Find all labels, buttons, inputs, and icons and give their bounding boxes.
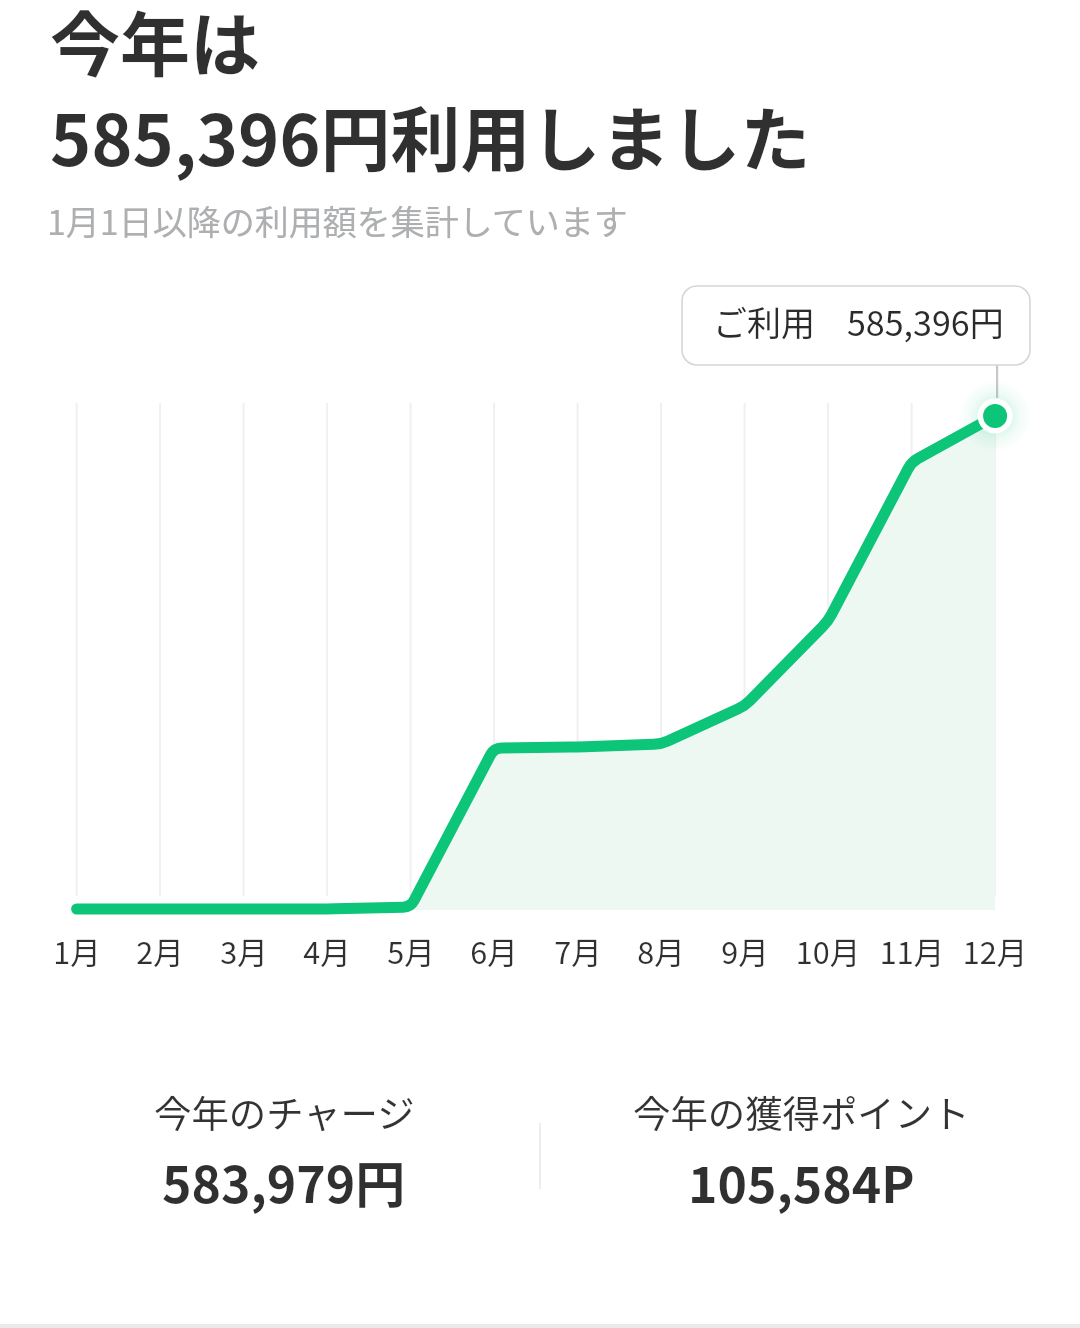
staticText: 12月 bbox=[935, 929, 1055, 973]
button[interactable]: 今年のチャージ bbox=[84, 1085, 484, 1217]
staticText: 583,979円 bbox=[162, 1145, 406, 1217]
staticText: 585,396円利用しました bbox=[50, 85, 811, 186]
other: 年間利用額の推移グラフ bbox=[0, 0, 1080, 1328]
staticText: 8月 bbox=[601, 929, 721, 973]
staticText: 7月 bbox=[518, 929, 638, 973]
staticText: 今年は bbox=[50, 0, 260, 91]
staticText: 2月 bbox=[100, 929, 220, 973]
staticText: 今年のチャージ bbox=[154, 1085, 415, 1139]
staticText: 11月 bbox=[852, 929, 972, 973]
staticText: 今年の獲得ポイント bbox=[633, 1085, 970, 1139]
staticText: 3月 bbox=[184, 929, 304, 973]
staticText: 1月 bbox=[17, 929, 137, 973]
staticText: 10月 bbox=[768, 929, 888, 973]
staticText: 9月 bbox=[685, 929, 805, 973]
staticText: 585,396円 bbox=[847, 297, 1004, 346]
staticText: 1月1日以降の利用額を集計しています bbox=[47, 196, 628, 245]
staticText: 4月 bbox=[267, 929, 387, 973]
staticText: 5月 bbox=[351, 929, 471, 973]
button[interactable]: ご利用 bbox=[682, 286, 1030, 365]
staticText: 105,584P bbox=[688, 1145, 915, 1217]
staticText: 6月 bbox=[434, 929, 554, 973]
button[interactable]: 今年の獲得ポイント bbox=[601, 1085, 1001, 1217]
staticText: ご利用 bbox=[713, 297, 815, 346]
